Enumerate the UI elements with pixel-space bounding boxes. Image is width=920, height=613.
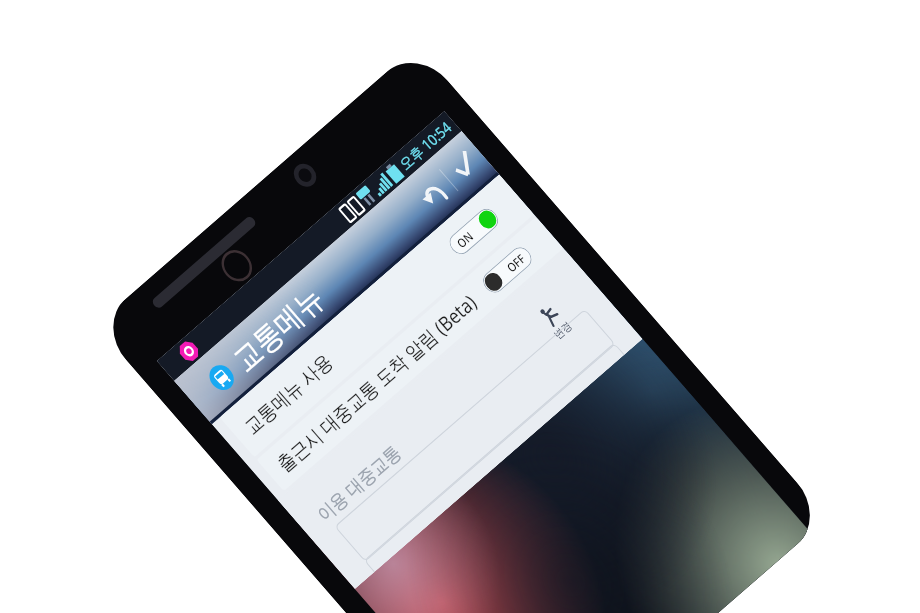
- button[interactable]: Done: [430, 131, 499, 201]
- staticText: 이용 대중교통: [311, 439, 406, 527]
- staticText: OFF: [503, 250, 529, 275]
- staticText: 교통메뉴: [225, 279, 332, 379]
- staticText: 출근시 대중교통 도착 알림 (Beta): [271, 288, 482, 477]
- staticText: ON: [453, 228, 476, 251]
- staticText: 변경: [551, 319, 574, 342]
- button[interactable]: 교통메뉴 사용: [219, 174, 534, 457]
- button[interactable]: 출근시 대중교통 도착 알림 (Beta): [256, 217, 563, 491]
- staticText: 교통메뉴 사용: [238, 347, 338, 440]
- button[interactable]: Undo: [398, 159, 467, 229]
- staticText: 오후 10:54: [395, 117, 456, 174]
- button[interactable]: ON: [445, 204, 502, 258]
- button[interactable]: OFF: [479, 243, 536, 297]
